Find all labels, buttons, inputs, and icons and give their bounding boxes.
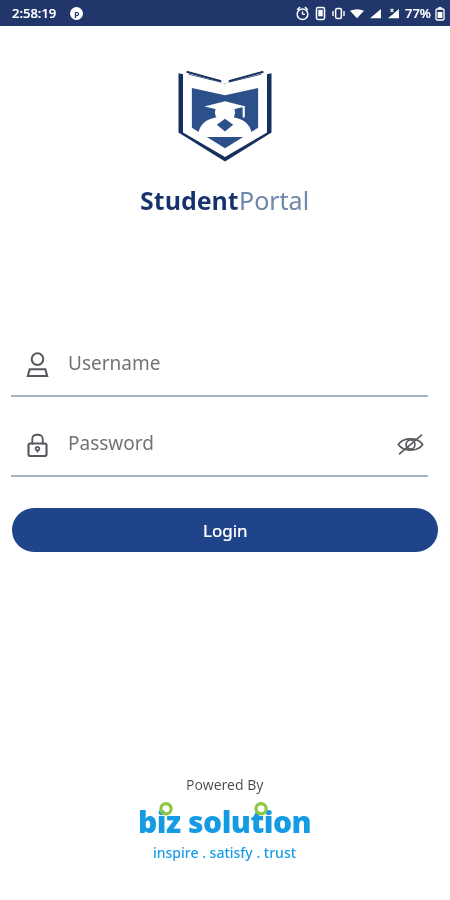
staticText: 2:58:19	[12, 4, 57, 22]
staticText: Student	[140, 183, 239, 217]
staticText: Login	[203, 519, 248, 542]
staticText: biz solution	[138, 801, 312, 842]
button[interactable]: Password	[11, 419, 428, 477]
button[interactable]: Username	[11, 339, 428, 397]
button[interactable]: Login	[12, 508, 438, 552]
staticText: Powered By	[186, 775, 264, 794]
staticText: inspire . satisfy . trust	[153, 843, 297, 862]
staticText: P	[74, 8, 80, 20]
staticText: Portal	[239, 183, 310, 217]
staticText: Username	[68, 350, 161, 376]
staticText: 77%	[405, 4, 431, 22]
button[interactable]: Show password	[392, 426, 428, 462]
staticText: Password	[68, 430, 154, 456]
